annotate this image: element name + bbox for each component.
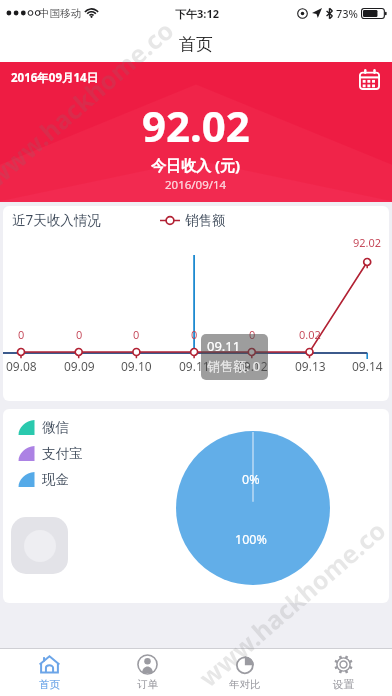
staticText: www.hackhome.com bbox=[191, 498, 392, 692]
staticText: 100% bbox=[235, 531, 267, 548]
staticText: 0 bbox=[249, 327, 256, 342]
staticText: 销售额 bbox=[185, 212, 226, 229]
staticText: 2016/09/14 bbox=[165, 177, 227, 193]
staticText: 支付宝 bbox=[42, 445, 83, 462]
staticText: 2016年09月14日 bbox=[11, 70, 99, 86]
staticText: 09.13 bbox=[295, 358, 326, 374]
staticText: 销售额: 0 bbox=[207, 357, 261, 375]
staticText: 首页 bbox=[39, 678, 60, 691]
staticText: 微信 bbox=[42, 419, 69, 436]
button[interactable]: 年对比 bbox=[196, 649, 294, 696]
button[interactable]: Calendar bbox=[354, 64, 384, 94]
staticText: 0 bbox=[191, 327, 198, 342]
staticText: 09.10 bbox=[121, 358, 152, 374]
staticText: 09.08 bbox=[6, 358, 37, 374]
button[interactable]: 首页 bbox=[0, 649, 98, 696]
button[interactable]: 设置 bbox=[294, 649, 392, 696]
staticText: 09.09 bbox=[64, 358, 95, 374]
staticText: 设置 bbox=[333, 678, 354, 691]
staticText: 0% bbox=[242, 471, 260, 488]
staticText: 今日收入 (元) bbox=[151, 155, 241, 175]
staticText: 92.02 bbox=[142, 97, 250, 154]
staticText: 0 bbox=[18, 327, 25, 342]
staticText: 92.02 bbox=[353, 235, 382, 250]
staticText: 中国移动 bbox=[39, 7, 81, 20]
staticText: www.hackhome.com bbox=[0, 0, 197, 192]
staticText: 年对比 bbox=[229, 678, 261, 691]
staticText: 09.11 bbox=[207, 337, 241, 355]
staticText: 09.12 bbox=[237, 358, 268, 374]
staticText: 09.11 bbox=[179, 358, 210, 374]
staticText: 首页 bbox=[179, 34, 213, 55]
staticText: 下午3:12 bbox=[175, 6, 219, 21]
staticText: 0.02 bbox=[299, 327, 321, 342]
staticText: 0 bbox=[76, 327, 83, 342]
staticText: 09.14 bbox=[352, 358, 383, 374]
staticText: 现金 bbox=[42, 471, 69, 488]
button[interactable]: Loading bbox=[11, 517, 68, 574]
staticText: 0 bbox=[133, 327, 140, 342]
staticText: 订单 bbox=[137, 678, 158, 691]
staticText: 73% bbox=[336, 6, 358, 21]
staticText: 近7天收入情况 bbox=[12, 211, 101, 229]
button[interactable]: 订单 bbox=[98, 649, 196, 696]
